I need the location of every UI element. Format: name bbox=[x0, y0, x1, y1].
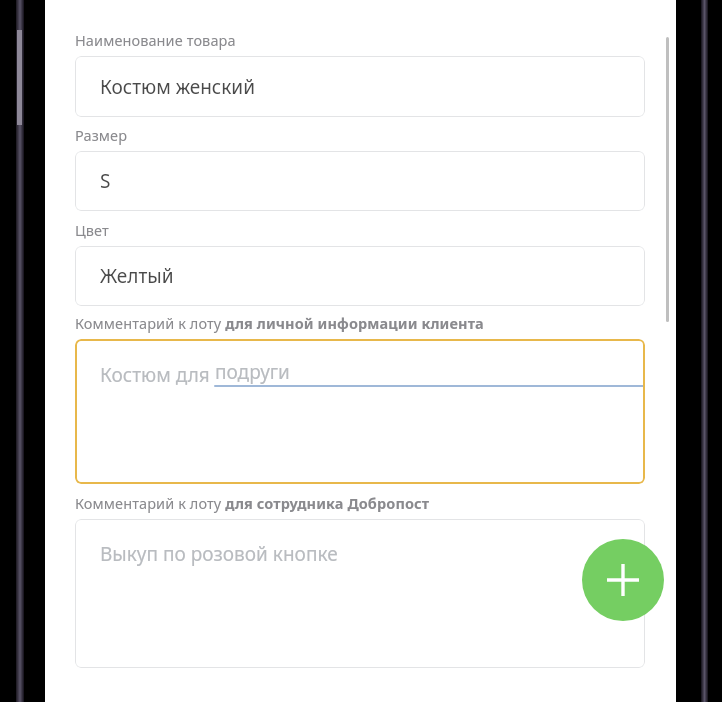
staticText: Желтый bbox=[100, 263, 174, 289]
button[interactable]: Костюм для bbox=[75, 339, 645, 484]
button[interactable]: S bbox=[75, 151, 645, 211]
button[interactable]: Выкуп по розовой кнопке bbox=[75, 519, 645, 668]
button[interactable]: Желтый bbox=[75, 246, 645, 306]
staticText: Комментарий к лоту для личной информации… bbox=[75, 313, 484, 333]
staticText: Костюм для bbox=[100, 362, 215, 388]
staticText: Выкуп по розовой кнопке bbox=[100, 541, 338, 567]
staticText: Комментарий к лоту для сотрудника Доброп… bbox=[75, 493, 430, 513]
staticText: Цвет bbox=[75, 220, 109, 240]
staticText: подруги bbox=[215, 359, 295, 385]
staticText: Костюм женский bbox=[100, 74, 255, 100]
staticText: Размер bbox=[75, 125, 128, 145]
button[interactable]: Костюм женский bbox=[75, 56, 645, 117]
staticText: Наименование товара bbox=[75, 30, 236, 50]
button[interactable]: Добавить bbox=[582, 539, 664, 621]
staticText: S bbox=[100, 168, 111, 194]
